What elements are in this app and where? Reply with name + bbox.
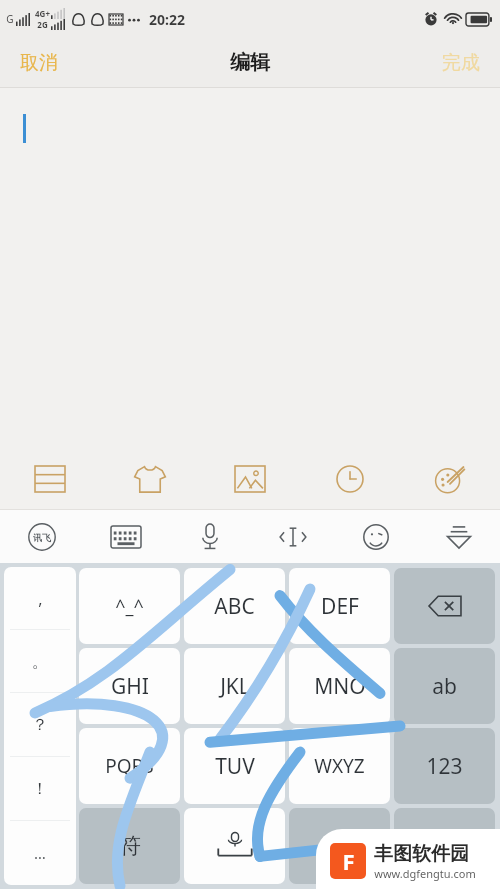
button[interactable]: Keyboard layout — [84, 510, 168, 563]
button[interactable]: 中/ — [289, 808, 390, 884]
staticText: 编辑 — [230, 50, 270, 75]
staticText: 中/ — [324, 831, 355, 861]
button[interactable]: JKL — [184, 648, 285, 724]
staticText: TUV — [215, 752, 255, 781]
staticText: 。 — [32, 652, 48, 672]
staticText: ab — [432, 672, 457, 701]
staticText: DEF — [321, 592, 359, 621]
button[interactable]: ！ — [4, 757, 76, 821]
staticText: 20:22 — [149, 10, 185, 29]
staticText: … — [34, 843, 46, 863]
button[interactable]: Sticker — [100, 449, 200, 509]
staticText: 123 — [426, 752, 463, 781]
button[interactable]: Space — [184, 808, 285, 884]
staticText: 2G — [37, 19, 48, 30]
staticText: 4G+ — [35, 8, 50, 19]
staticText: JKL — [220, 672, 250, 701]
button[interactable]: … — [4, 821, 76, 885]
button[interactable]: GHI — [79, 648, 180, 724]
button[interactable]: ^_^ — [79, 568, 180, 644]
button[interactable]: Emoji — [334, 510, 417, 563]
button[interactable]: DEF — [289, 568, 390, 644]
staticText: ^_^ — [115, 594, 144, 619]
staticText: F — [342, 846, 355, 876]
button[interactable]: MNO — [289, 648, 390, 724]
staticText: 符 — [119, 832, 141, 860]
staticText: 丰图软件园 — [374, 842, 469, 866]
staticText: GHI — [111, 672, 149, 701]
staticText: PQRS — [105, 753, 154, 779]
button[interactable]: Theme — [400, 449, 500, 509]
button[interactable]: 符 — [79, 808, 180, 884]
staticText: ！ — [32, 779, 48, 799]
staticText: WXYZ — [314, 753, 365, 779]
button[interactable]: PQRS — [79, 728, 180, 804]
button[interactable]: TUV — [184, 728, 285, 804]
button[interactable]: Hide keyboard — [417, 510, 500, 563]
staticText: ？ — [32, 715, 48, 735]
button[interactable]: Input method logo — [0, 510, 84, 563]
button[interactable]: ABC — [184, 568, 285, 644]
staticText: www.dgfengtu.com — [374, 866, 476, 881]
button[interactable]: 。 — [4, 630, 76, 693]
button[interactable]: 完成 — [422, 41, 500, 85]
button[interactable]: Delete — [394, 568, 495, 644]
button[interactable]: Text style — [0, 449, 100, 509]
staticText: , — [38, 588, 43, 610]
button[interactable]: Voice input — [168, 510, 251, 563]
staticText: 讯飞 — [33, 532, 51, 543]
staticText: 完成 — [442, 51, 480, 75]
button[interactable]: Insert image — [200, 449, 300, 509]
button[interactable]: 123 — [394, 728, 495, 804]
button[interactable]: 取消 — [0, 41, 78, 85]
button[interactable]: ？ — [4, 693, 76, 757]
button[interactable]: ab — [394, 648, 495, 724]
button[interactable]: , — [4, 567, 76, 630]
button[interactable]: Enter — [394, 808, 495, 884]
staticText: MNO — [314, 672, 366, 701]
button[interactable]: WXYZ — [289, 728, 390, 804]
staticText: 取消 — [20, 51, 58, 75]
button[interactable]: Reminder — [300, 449, 400, 509]
staticText: ABC — [214, 592, 255, 621]
button[interactable]: Move cursor — [251, 510, 334, 563]
staticText: G — [6, 12, 14, 26]
